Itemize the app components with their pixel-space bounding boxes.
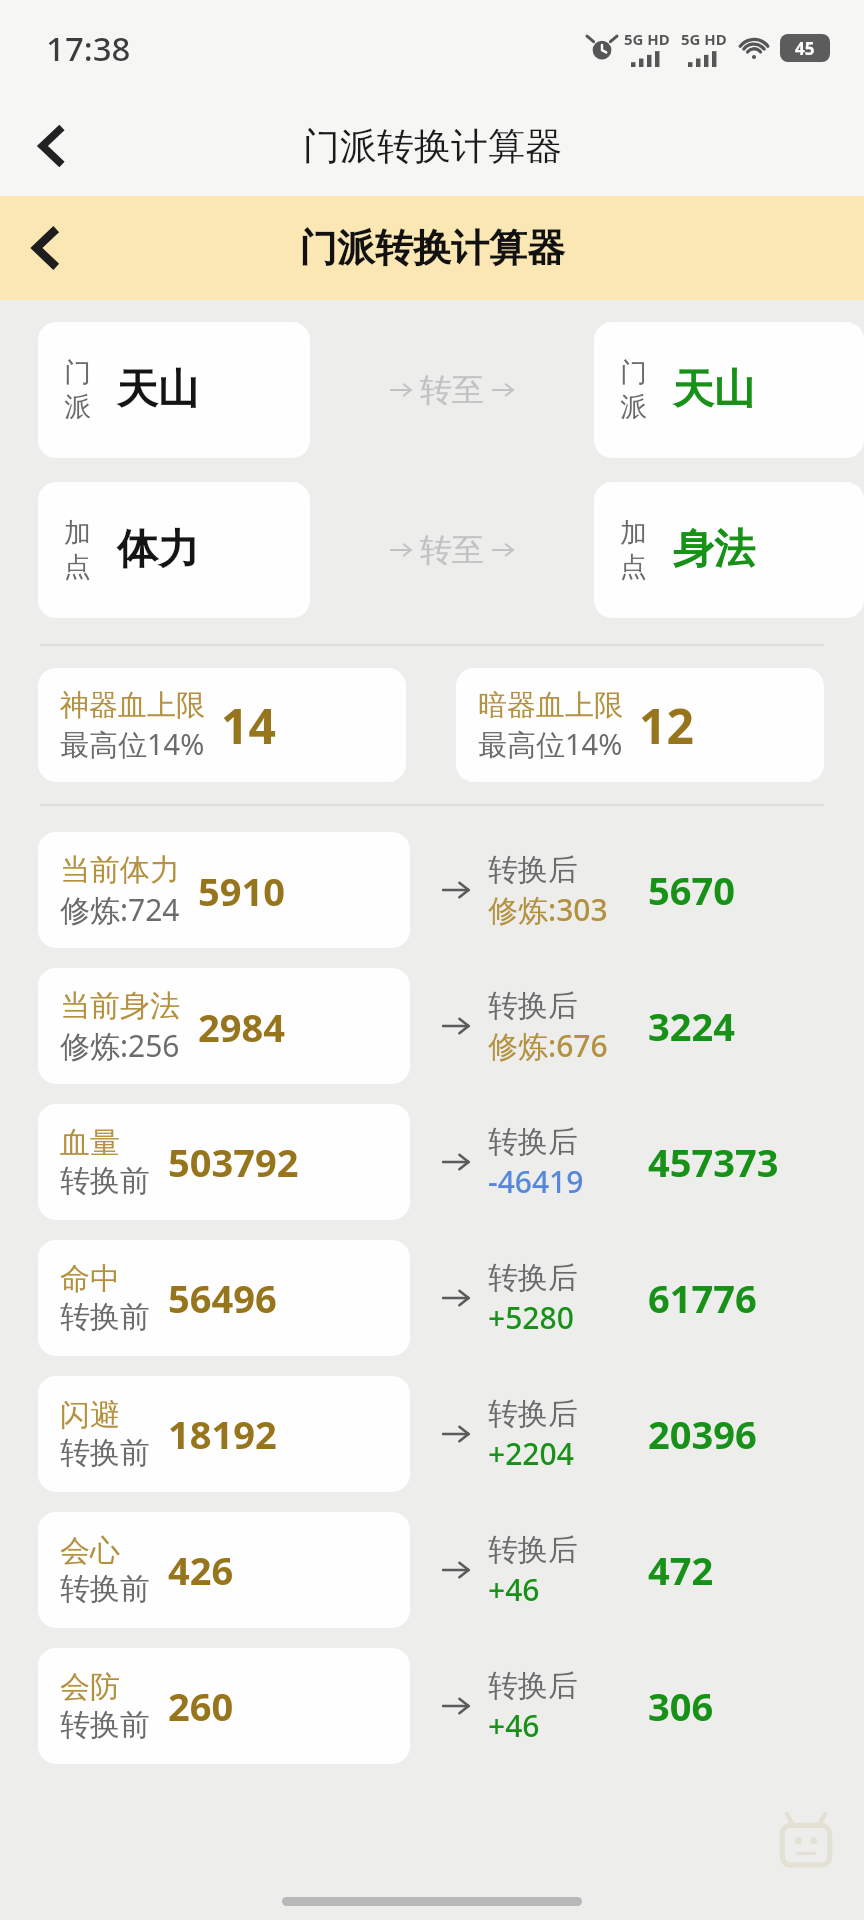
staticText: 最高位14% bbox=[478, 724, 623, 764]
button[interactable]: 门 bbox=[594, 322, 864, 458]
staticText: 18192 bbox=[168, 1408, 277, 1460]
staticText: +2204 bbox=[488, 1433, 574, 1474]
staticText: 暗器血上限 bbox=[478, 687, 623, 724]
staticText: 修炼:724 bbox=[60, 889, 180, 930]
staticText: 17:38 bbox=[46, 26, 131, 71]
button[interactable]: 当前体力 bbox=[38, 832, 410, 948]
button[interactable]: 加 bbox=[594, 482, 864, 618]
staticText: 天山 bbox=[673, 364, 755, 416]
staticText: 会心 bbox=[60, 1532, 120, 1570]
button[interactable]: 会防 bbox=[38, 1648, 410, 1764]
staticText: 神器血上限 bbox=[60, 687, 205, 724]
button[interactable]: 血量 bbox=[38, 1104, 410, 1220]
staticText: 派 bbox=[620, 390, 647, 424]
button[interactable]: Back bbox=[16, 110, 88, 182]
staticText: -46419 bbox=[488, 1161, 584, 1202]
staticText: 260 bbox=[168, 1680, 234, 1732]
staticText: 修炼:256 bbox=[60, 1025, 180, 1066]
button[interactable]: 门 bbox=[38, 322, 310, 458]
staticText: 61776 bbox=[648, 1272, 757, 1324]
staticText: 体力 bbox=[117, 524, 199, 576]
staticText: 转至 bbox=[420, 370, 484, 410]
staticText: 身法 bbox=[673, 524, 755, 576]
staticText: 加 bbox=[620, 516, 647, 550]
staticText: 会防 bbox=[60, 1668, 120, 1706]
staticText: 转换前 bbox=[60, 1570, 150, 1608]
staticText: 转换后 bbox=[488, 1123, 578, 1161]
staticText: 20396 bbox=[648, 1408, 757, 1460]
staticText: 12 bbox=[639, 693, 694, 758]
staticText: 门派转换计算器 bbox=[303, 123, 562, 170]
staticText: 修炼:303 bbox=[488, 889, 608, 930]
staticText: 天山 bbox=[117, 364, 199, 416]
staticText: 转换前 bbox=[60, 1298, 150, 1336]
staticText: 转换后 bbox=[488, 1667, 578, 1705]
staticText: 457373 bbox=[648, 1136, 779, 1188]
button[interactable]: 当前身法 bbox=[38, 968, 410, 1084]
staticText: 修炼:676 bbox=[488, 1025, 608, 1066]
staticText: 426 bbox=[168, 1544, 234, 1596]
staticText: 5G HD bbox=[681, 29, 727, 49]
staticText: 472 bbox=[648, 1544, 714, 1596]
staticText: 56496 bbox=[168, 1272, 277, 1324]
staticText: 转换前 bbox=[60, 1706, 150, 1744]
staticText: 点 bbox=[64, 550, 91, 584]
button[interactable]: 暗器血上限 bbox=[456, 668, 824, 782]
staticText: 转至 bbox=[420, 530, 484, 570]
staticText: 3224 bbox=[648, 1000, 735, 1052]
staticText: +46 bbox=[488, 1569, 540, 1610]
staticText: 45 bbox=[795, 37, 815, 60]
staticText: 503792 bbox=[168, 1136, 299, 1188]
staticText: 5670 bbox=[648, 864, 735, 916]
button[interactable]: 返回 bbox=[10, 212, 82, 284]
staticText: 5910 bbox=[198, 865, 285, 917]
staticText: 14 bbox=[221, 693, 276, 758]
staticText: 当前体力 bbox=[60, 851, 180, 889]
staticText: 转换前 bbox=[60, 1434, 150, 1472]
staticText: 门 bbox=[620, 356, 647, 390]
staticText: 转换后 bbox=[488, 1259, 578, 1297]
staticText: 派 bbox=[64, 390, 91, 424]
staticText: 转换前 bbox=[60, 1162, 150, 1200]
staticText: 闪避 bbox=[60, 1396, 120, 1434]
staticText: 转换后 bbox=[488, 987, 578, 1025]
button[interactable]: 会心 bbox=[38, 1512, 410, 1628]
staticText: 命中 bbox=[60, 1260, 120, 1298]
staticText: +46 bbox=[488, 1705, 540, 1746]
staticText: 加 bbox=[64, 516, 91, 550]
staticText: 门派转换计算器 bbox=[299, 224, 565, 272]
staticText: 5G HD bbox=[624, 29, 670, 49]
staticText: 最高位14% bbox=[60, 724, 205, 764]
staticText: 转换后 bbox=[488, 851, 578, 889]
staticText: 门 bbox=[64, 356, 91, 390]
staticText: 当前身法 bbox=[60, 987, 180, 1025]
staticText: 血量 bbox=[60, 1124, 120, 1162]
button[interactable]: 命中 bbox=[38, 1240, 410, 1356]
button[interactable]: 加 bbox=[38, 482, 310, 618]
staticText: 转换后 bbox=[488, 1531, 578, 1569]
staticText: 2984 bbox=[198, 1001, 285, 1053]
button[interactable]: 神器血上限 bbox=[38, 668, 406, 782]
staticText: 转换后 bbox=[488, 1395, 578, 1433]
button[interactable]: 闪避 bbox=[38, 1376, 410, 1492]
staticText: +5280 bbox=[488, 1297, 574, 1338]
staticText: 点 bbox=[620, 550, 647, 584]
staticText: 306 bbox=[648, 1680, 714, 1732]
